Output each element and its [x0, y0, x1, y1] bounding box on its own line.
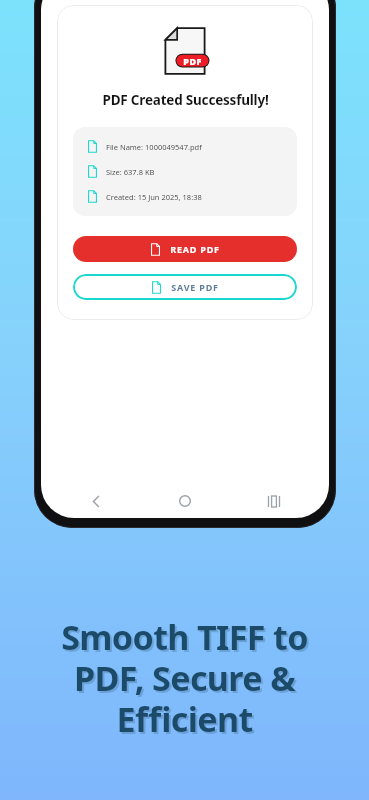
button[interactable]: Recent apps: [261, 488, 287, 514]
button[interactable]: Back: [83, 488, 109, 514]
staticText: Smooth TIFF to PDF, Secure & Efficient: [18, 614, 351, 742]
button[interactable]: Home: [172, 488, 198, 514]
staticText: PDF: [183, 55, 202, 67]
button[interactable]: READ PDF: [73, 236, 297, 262]
staticText: SAVE PDF: [171, 281, 219, 293]
staticText: Size: 637.8 KB: [106, 167, 155, 177]
staticText: PDF Created Successfully!: [102, 91, 269, 109]
staticText: Smooth TIFF to PDF, Secure & Efficient: [20, 616, 353, 744]
staticText: File Name: 1000049547.pdf: [106, 142, 202, 152]
staticText: Created: 15 Jun 2025, 18:38: [106, 192, 202, 202]
staticText: READ PDF: [170, 243, 220, 255]
button[interactable]: SAVE PDF: [73, 274, 297, 300]
